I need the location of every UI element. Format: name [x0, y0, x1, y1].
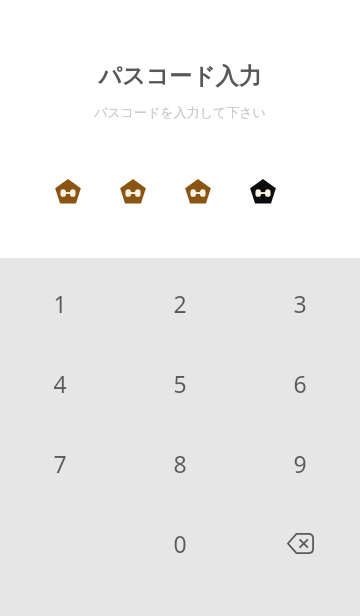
staticText: 9: [293, 448, 307, 479]
staticText: 3: [293, 288, 307, 319]
button[interactable]: 4: [0, 343, 120, 423]
button[interactable]: Delete: [240, 503, 360, 583]
button[interactable]: 8: [120, 423, 240, 503]
staticText: 5: [173, 368, 187, 399]
button[interactable]: 0: [120, 503, 240, 583]
staticText: 8: [173, 448, 187, 479]
staticText: 1: [53, 288, 67, 319]
staticText: 0: [173, 528, 187, 559]
button[interactable]: 2: [120, 263, 240, 343]
button[interactable]: 6: [240, 343, 360, 423]
button[interactable]: 7: [0, 423, 120, 503]
button[interactable]: 1: [0, 263, 120, 343]
button[interactable]: 3: [240, 263, 360, 343]
button[interactable]: 5: [120, 343, 240, 423]
staticText: 7: [53, 448, 67, 479]
staticText: 2: [173, 288, 187, 319]
staticText: 4: [53, 368, 67, 399]
staticText: 6: [293, 368, 307, 399]
staticText: パスコード入力: [98, 62, 262, 91]
staticText: パスコードを入力して下さい: [94, 104, 266, 120]
button[interactable]: 9: [240, 423, 360, 503]
